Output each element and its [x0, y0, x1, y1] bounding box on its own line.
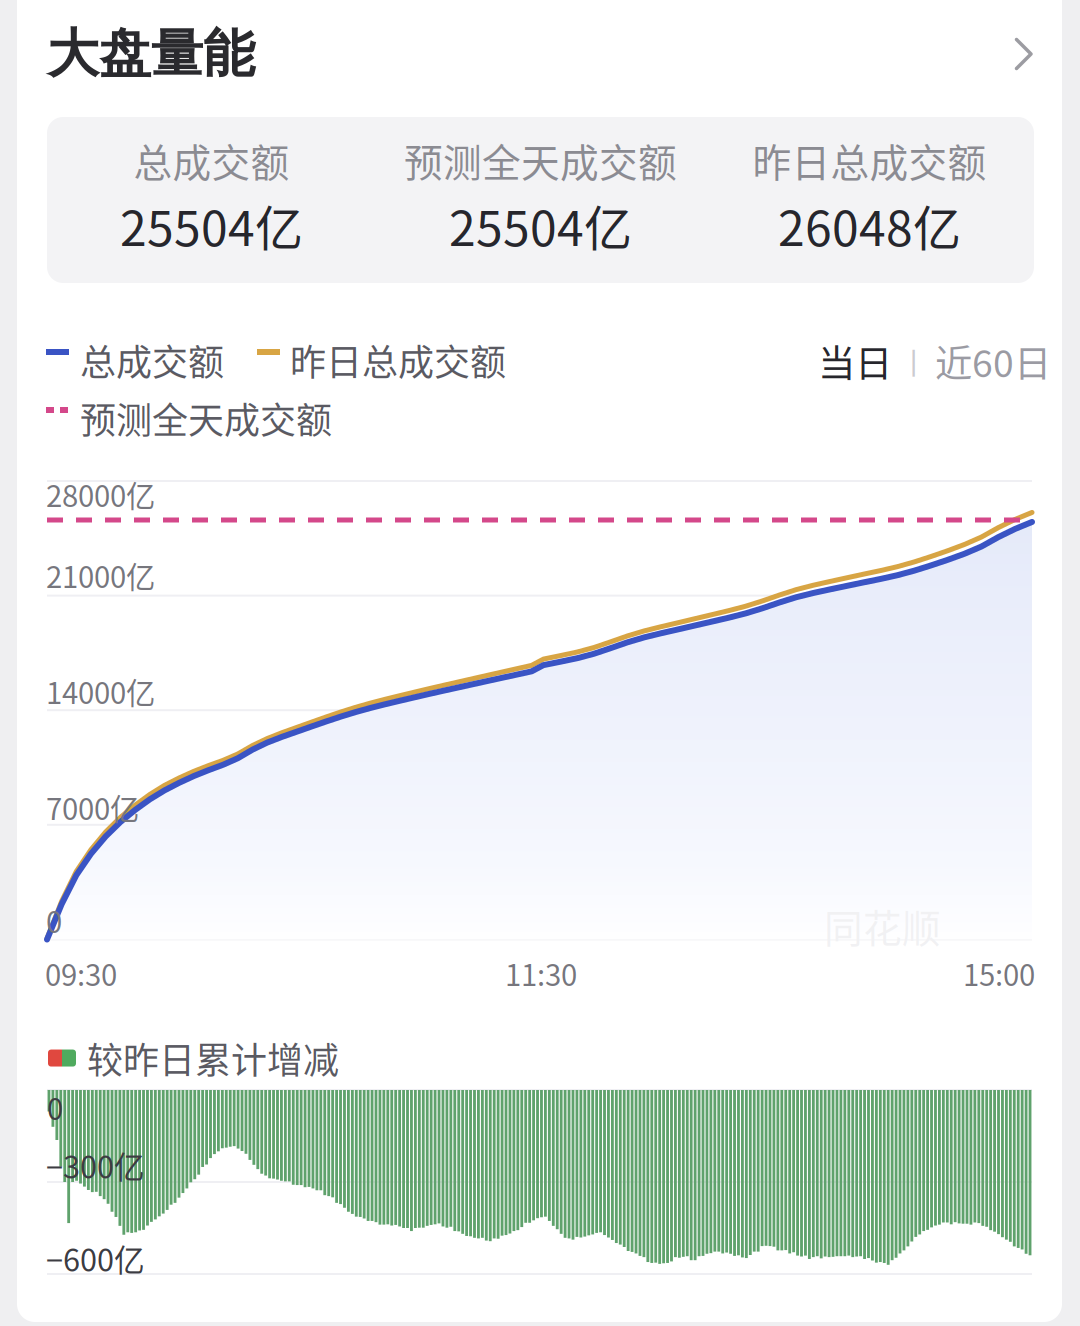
staticText: −600亿 — [46, 1236, 145, 1280]
staticText: 14000亿 — [46, 670, 155, 712]
staticText: 总成交额 — [133, 132, 289, 188]
button[interactable]: 当日 — [0, 0, 1080, 1326]
staticText: 预测全天成交额 — [80, 392, 332, 444]
staticText: 昨日总成交额 — [752, 132, 986, 188]
staticText: 21000亿 — [46, 554, 155, 596]
staticText: 昨日总成交额 — [290, 334, 506, 386]
staticText: 11:30 — [505, 952, 577, 994]
staticText: 25504亿 — [449, 190, 632, 260]
staticText: 25504亿 — [120, 190, 303, 260]
staticText: 7000亿 — [46, 786, 139, 828]
staticText: 当日 — [818, 334, 892, 388]
staticText: −300亿 — [46, 1143, 145, 1187]
staticText: 丨 — [899, 340, 928, 382]
button[interactable]: 大盘量能 — [0, 0, 1080, 1326]
staticText: 15:00 — [963, 952, 1035, 994]
staticText: 总成交额 — [80, 334, 224, 386]
staticText: 同花顺 — [824, 898, 941, 954]
staticText: 较昨日累计增减 — [87, 1032, 339, 1084]
staticText: 0 — [47, 1086, 63, 1128]
staticText: 大盘量能 — [47, 21, 255, 87]
staticText: 09:30 — [45, 952, 117, 994]
staticText: 28000亿 — [46, 473, 155, 515]
staticText: 0 — [46, 899, 62, 941]
staticText: 近60日 — [935, 334, 1051, 388]
staticText: 预测全天成交额 — [404, 132, 677, 188]
staticText: 26048亿 — [778, 190, 961, 260]
